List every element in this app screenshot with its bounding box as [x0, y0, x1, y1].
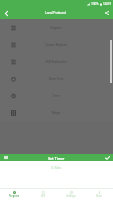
button[interactable]: Settings — [57, 189, 85, 200]
staticText: 100% — [91, 2, 99, 6]
staticText: 14:09 — [103, 2, 111, 6]
staticText: Settings — [66, 195, 76, 198]
staticText: Local Postcard — [45, 11, 66, 15]
staticText: SMS Notification — [27, 60, 85, 63]
staticText: Ringtone — [27, 26, 85, 29]
button[interactable]: Widget — [0, 104, 113, 121]
staticText: Ringtone — [9, 195, 20, 198]
staticText: Bell — [41, 195, 46, 198]
button[interactable]: Share — [100, 7, 113, 19]
staticText: Timer — [27, 94, 85, 97]
button[interactable]: More — [85, 189, 113, 200]
staticText: Contact Ringtone — [27, 43, 85, 46]
button[interactable]: Confirm — [102, 154, 113, 161]
button[interactable]: Ringtone — [0, 189, 29, 200]
staticText: Widget — [27, 111, 85, 114]
button[interactable]: Menu — [0, 154, 11, 161]
button[interactable]: Back — [0, 7, 13, 19]
button[interactable]: SMS Notification — [0, 53, 113, 70]
button[interactable]: Contact Ringtone — [0, 36, 113, 53]
staticText: 5 Min — [51, 165, 62, 170]
button[interactable]: Alarm Tone — [0, 70, 113, 87]
button[interactable]: Bell — [29, 189, 57, 200]
staticText: Set Timer — [48, 156, 65, 160]
staticText: Alarm Tone — [27, 77, 85, 80]
staticText: More — [96, 195, 102, 198]
